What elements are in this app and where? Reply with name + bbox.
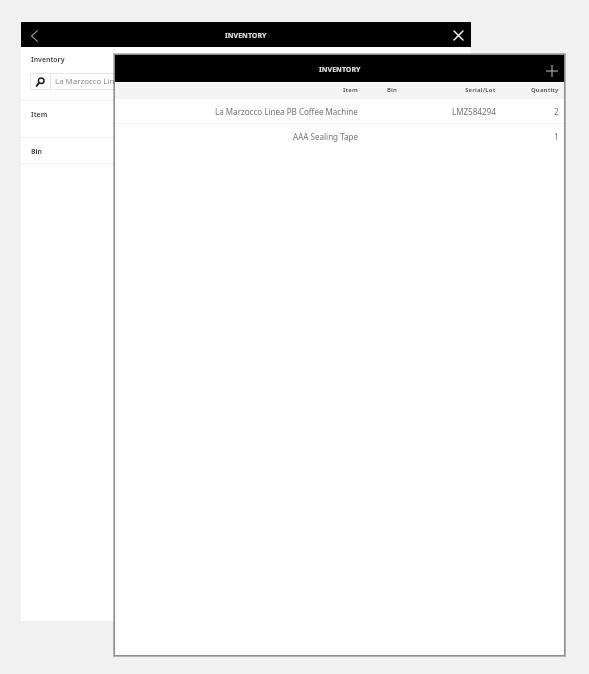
staticText: 2 bbox=[554, 106, 559, 117]
staticText: AAA Sealing Tape bbox=[293, 131, 358, 142]
staticText: Bin bbox=[31, 147, 42, 156]
button[interactable]: La Marzocco Linea PB Coffee Machine bbox=[115, 99, 564, 123]
button[interactable]: Item bbox=[21, 101, 471, 137]
staticText: Item bbox=[343, 86, 358, 94]
staticText: INVENTORY bbox=[225, 30, 267, 40]
staticText: INVENTORY bbox=[319, 64, 361, 74]
staticText: Inventory bbox=[31, 55, 65, 64]
staticText: Serial/Lot bbox=[465, 86, 496, 94]
button[interactable]: AAA Sealing Tape bbox=[115, 124, 564, 148]
other: Search bbox=[30, 73, 50, 90]
button[interactable]: Close bbox=[446, 22, 471, 47]
staticText: La Marzocco Linea PB Coffee Machine bbox=[215, 106, 358, 117]
button[interactable]: Search bbox=[30, 73, 130, 90]
button[interactable]: Back bbox=[21, 22, 48, 47]
staticText: Bin bbox=[387, 86, 398, 94]
button[interactable]: Add item bbox=[538, 55, 564, 82]
button[interactable]: Bin bbox=[21, 138, 471, 163]
staticText: Item bbox=[31, 110, 48, 119]
staticText: La Marzocco Linea PB Coffee Machine bbox=[55, 76, 130, 87]
staticText: LMZ584294 bbox=[452, 106, 496, 117]
staticText: Quantity bbox=[531, 86, 559, 94]
staticText: 1 bbox=[554, 131, 559, 142]
